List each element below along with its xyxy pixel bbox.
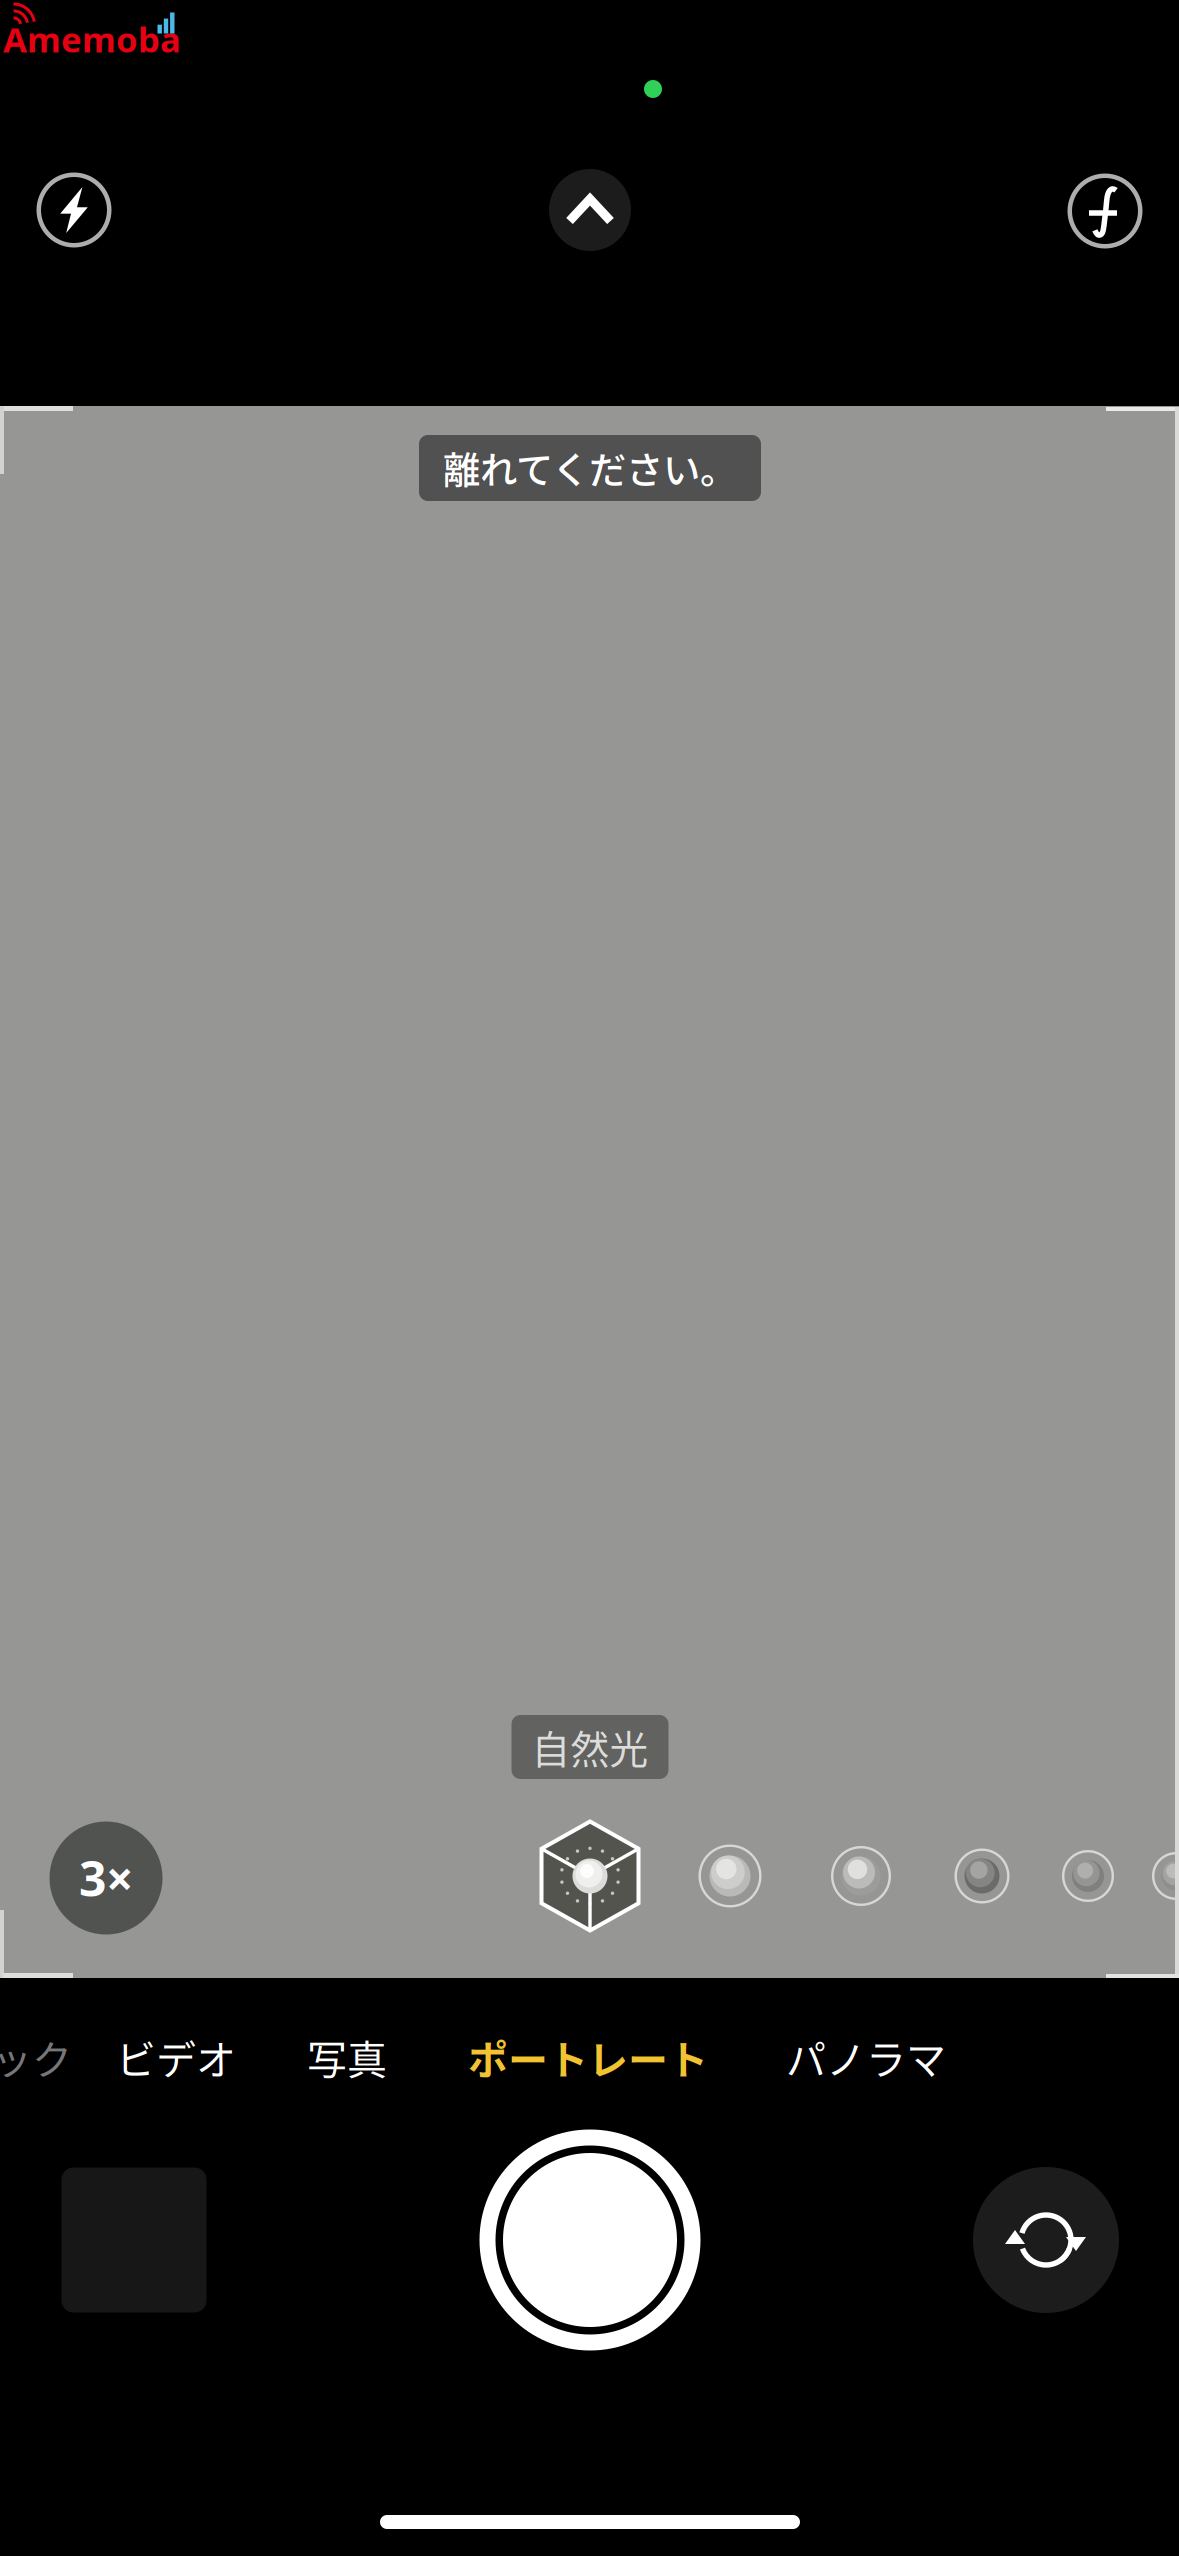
staticText: ビデオ [116, 2028, 236, 2086]
button[interactable]: Studio light [682, 1828, 778, 1924]
button[interactable]: Stage light [934, 1828, 1030, 1924]
button[interactable]: Take photo [470, 2120, 710, 2360]
staticText: 写真 [307, 2028, 387, 2086]
staticText: 自然光 [531, 1719, 648, 1775]
button[interactable]: Contour light [813, 1828, 909, 1924]
button[interactable]: Natural light [525, 1811, 655, 1941]
button[interactable]: Stage light mono [1040, 1828, 1136, 1924]
button[interactable]: Flash [14, 150, 134, 270]
staticText: ック [0, 2028, 72, 2086]
button[interactable]: Zoom, 3 times [49, 1821, 162, 1934]
button[interactable]: Switch camera [966, 2160, 1126, 2320]
button[interactable]: ビデオ [108, 2019, 244, 2095]
button[interactable]: ック [0, 2019, 92, 2095]
staticText: パノラマ [786, 2028, 946, 2086]
button[interactable]: Depth control [1045, 151, 1165, 271]
staticText: Amemoba [3, 16, 181, 62]
button[interactable]: ポートレート [452, 2019, 724, 2095]
button[interactable]: High-key light mono [1128, 1828, 1179, 1924]
staticText: 離れてください。 [443, 441, 737, 495]
button[interactable]: パノラマ [774, 2019, 958, 2095]
staticText: 3× [79, 1846, 133, 1910]
staticText: ポートレート [468, 2028, 708, 2086]
button[interactable]: 写真 [287, 2019, 407, 2095]
button[interactable]: More camera controls [530, 150, 650, 270]
